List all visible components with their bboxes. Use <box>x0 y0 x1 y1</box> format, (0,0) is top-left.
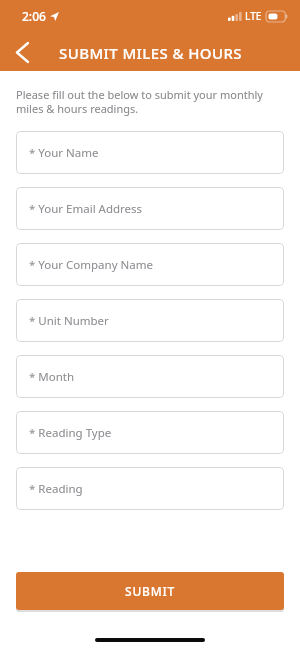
staticText: * Month <box>29 369 75 385</box>
staticText: SUBMIT MILES & HOURS <box>59 43 242 63</box>
staticText: * Your Company Name <box>29 257 153 273</box>
staticText: * Your Name <box>29 145 99 161</box>
button[interactable]: Back <box>0 34 44 71</box>
staticText: LTE <box>245 9 262 23</box>
button[interactable]: * Your Company Name <box>16 243 284 286</box>
button[interactable]: * Your Name <box>16 131 284 174</box>
button[interactable]: * Unit Number <box>16 299 284 342</box>
staticText: * Unit Number <box>29 313 109 329</box>
staticText: SUBMIT <box>125 583 176 599</box>
button[interactable]: * Reading <box>16 467 284 510</box>
button[interactable]: SUBMIT <box>16 572 284 610</box>
staticText: * Your Email Address <box>29 201 143 217</box>
button[interactable]: * Reading Type <box>16 411 284 454</box>
button[interactable]: * Month <box>16 355 284 398</box>
staticText: 2:06 <box>22 8 46 24</box>
staticText: * Reading Type <box>29 425 112 441</box>
staticText: * Reading <box>29 481 83 497</box>
staticText: Please fill out the below to submit your… <box>16 87 284 116</box>
button[interactable]: * Your Email Address <box>16 187 284 230</box>
